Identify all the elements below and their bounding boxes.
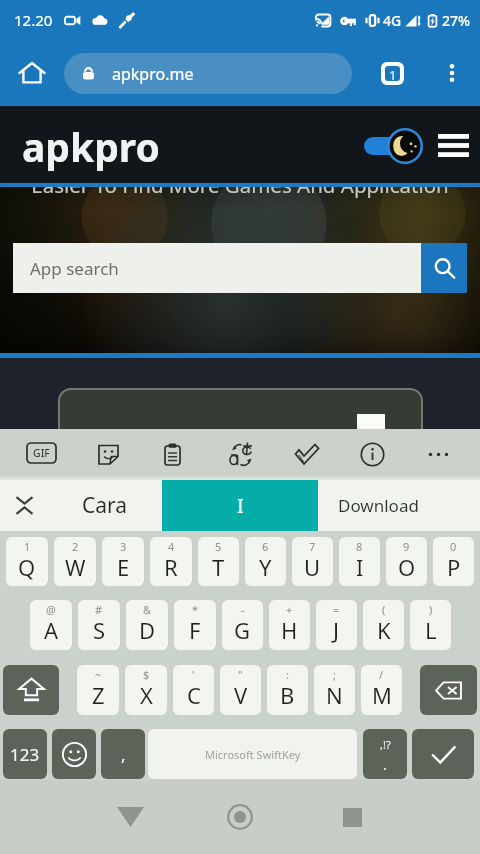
button[interactable]: Clipboard xyxy=(153,435,191,473)
button[interactable]: Home xyxy=(216,780,264,854)
button[interactable]: More options xyxy=(432,53,472,93)
staticText: " xyxy=(238,667,243,682)
button[interactable]: ~ xyxy=(77,665,119,715)
button[interactable]: ; xyxy=(314,665,355,715)
button[interactable]: ,!? xyxy=(363,729,407,779)
staticText: Download xyxy=(338,494,419,517)
staticText: . xyxy=(383,754,388,774)
staticText: $ xyxy=(143,667,150,682)
button[interactable]: 6 xyxy=(245,537,286,586)
button[interactable]: Shift xyxy=(3,665,59,715)
button[interactable]: Translate xyxy=(222,435,260,473)
button[interactable]: Microsoft SwiftKey xyxy=(148,729,357,779)
staticText: A xyxy=(44,615,59,645)
staticText: Z xyxy=(92,680,105,710)
button[interactable]: 7 xyxy=(292,537,333,586)
staticText: ; xyxy=(333,667,336,682)
button[interactable]: ) xyxy=(410,600,451,650)
button[interactable]: 9 xyxy=(386,537,427,586)
staticText: 6 xyxy=(262,539,269,554)
staticText: ) xyxy=(429,602,433,617)
button[interactable]: 2 xyxy=(54,537,96,586)
button[interactable]: 8 xyxy=(339,537,380,586)
staticText: 5 xyxy=(215,539,222,554)
button[interactable]: 3 xyxy=(102,537,144,586)
staticText: + xyxy=(286,602,293,617)
button[interactable]: 123 xyxy=(3,729,47,779)
staticText: Q xyxy=(18,552,36,582)
button[interactable]: Cara xyxy=(48,480,162,531)
staticText: 4G xyxy=(383,11,402,30)
button[interactable]: More xyxy=(419,435,457,473)
staticText: # xyxy=(95,602,103,617)
button[interactable]: Stickers xyxy=(89,435,127,473)
staticText: E xyxy=(117,552,130,582)
staticText: Easier To Find More Games And Applicatio… xyxy=(0,171,480,199)
button[interactable]: Tabs xyxy=(372,53,412,93)
button[interactable]: ( xyxy=(363,600,404,650)
staticText: apkpro.me xyxy=(112,63,194,85)
staticText: 123 xyxy=(10,743,40,766)
button[interactable]: 5 xyxy=(198,537,239,586)
staticText: : xyxy=(286,667,289,682)
button[interactable]: # xyxy=(78,600,120,650)
staticText: 1 xyxy=(24,539,31,554)
staticText: = xyxy=(333,602,340,617)
staticText: 4 xyxy=(168,539,175,554)
staticText: Cara xyxy=(82,491,128,520)
button[interactable]: * xyxy=(174,600,216,650)
button[interactable]: $ xyxy=(125,665,167,715)
button[interactable]: : xyxy=(267,665,308,715)
staticText: I xyxy=(356,552,364,582)
button[interactable]: / xyxy=(361,665,402,715)
staticText: apkpro xyxy=(22,120,160,173)
button[interactable]: + xyxy=(269,600,310,650)
button[interactable]: Search xyxy=(421,243,467,293)
button[interactable]: Emoji xyxy=(52,729,96,779)
button[interactable]: Enter xyxy=(412,729,474,779)
staticText: S xyxy=(93,615,106,645)
button[interactable]: apkpro.me xyxy=(64,53,352,94)
button[interactable]: = xyxy=(316,600,357,650)
button[interactable]: Editor xyxy=(287,435,325,473)
staticText: 8 xyxy=(356,539,363,554)
button[interactable]: ' xyxy=(173,665,214,715)
button[interactable]: App search xyxy=(13,243,421,293)
button[interactable]: 0 xyxy=(433,537,474,586)
button[interactable]: GIF xyxy=(27,443,56,463)
button[interactable]: & xyxy=(126,600,168,650)
staticText: @ xyxy=(46,602,56,617)
button[interactable]: Info xyxy=(353,435,391,473)
button[interactable]: Expand xyxy=(0,480,48,531)
staticText: ,!? xyxy=(380,737,391,752)
staticText: M xyxy=(372,680,392,710)
staticText: I xyxy=(237,492,244,519)
staticText: 0 xyxy=(450,539,457,554)
staticText: P xyxy=(447,552,461,582)
staticText: 12.20 xyxy=(14,10,53,30)
button[interactable]: DOWNLOAD xyxy=(60,390,421,466)
button[interactable]: Download xyxy=(318,480,438,531)
button[interactable]: Backspace xyxy=(420,665,477,715)
button[interactable]: - xyxy=(222,600,263,650)
staticText: , xyxy=(121,743,126,766)
staticText: W xyxy=(65,552,86,582)
button[interactable]: Recents xyxy=(328,780,376,854)
button[interactable]: Home xyxy=(11,52,53,94)
button[interactable]: , xyxy=(101,729,145,779)
staticText: Y xyxy=(259,552,272,582)
staticText: G xyxy=(234,615,251,645)
staticText: H xyxy=(281,615,298,645)
staticText: * xyxy=(192,602,199,617)
staticText: J xyxy=(333,615,340,645)
button[interactable]: 1 xyxy=(6,537,48,586)
button[interactable]: 4 xyxy=(150,537,192,586)
button[interactable]: @ xyxy=(30,600,72,650)
button[interactable]: Back xyxy=(106,780,154,854)
button[interactable]: I xyxy=(162,480,318,531)
staticText: - xyxy=(241,602,245,617)
button[interactable]: Menu xyxy=(432,124,474,166)
button[interactable]: Dark mode toggle xyxy=(364,128,424,164)
button[interactable]: " xyxy=(220,665,261,715)
staticText: & xyxy=(143,602,152,617)
